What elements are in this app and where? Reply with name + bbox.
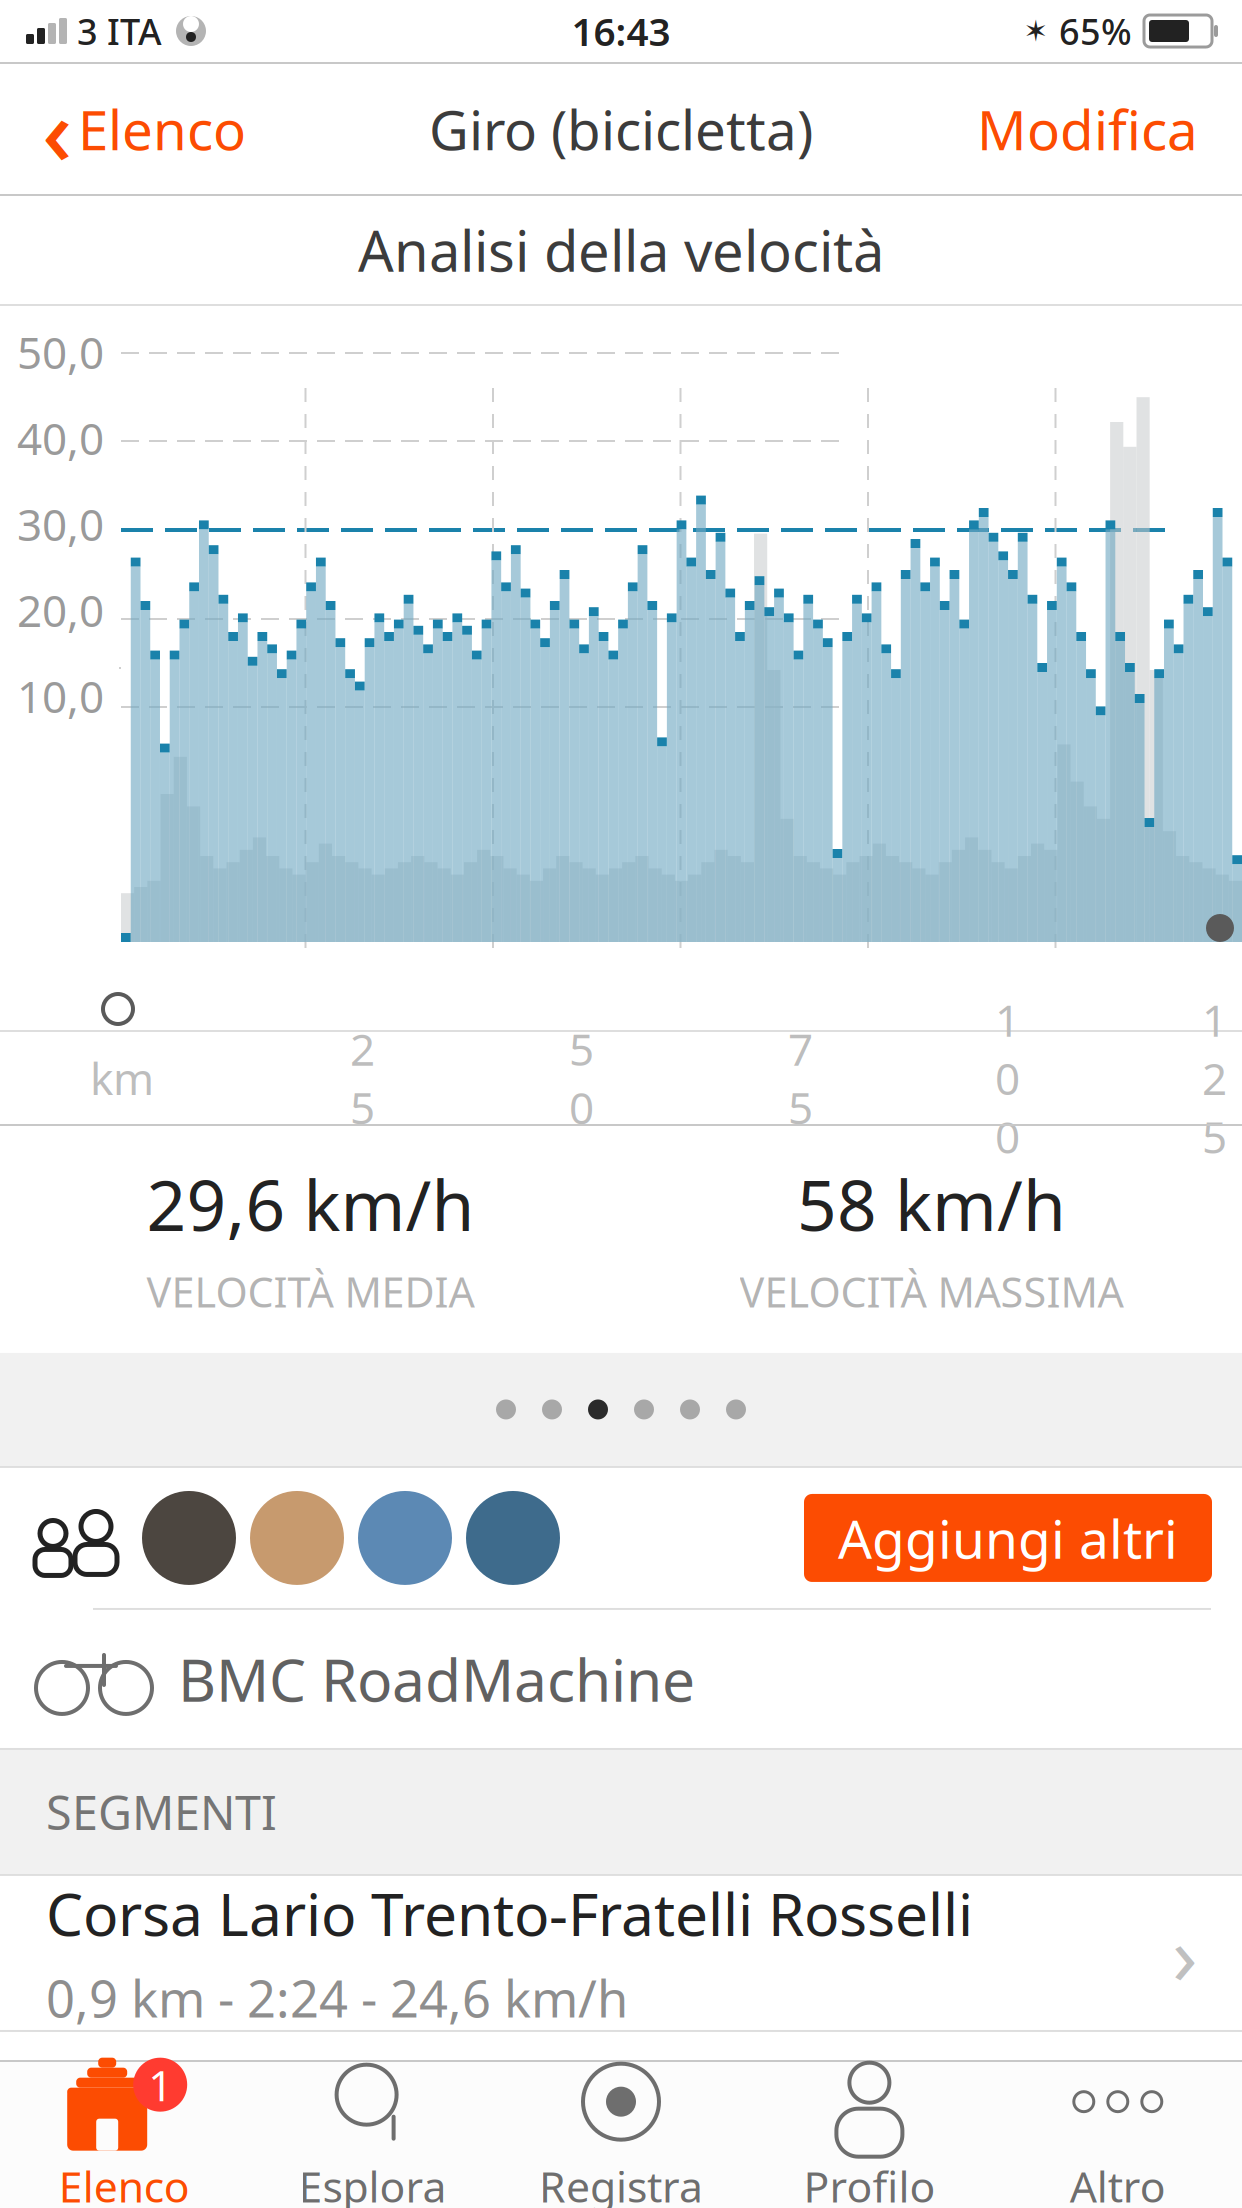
staticText: 50 (569, 1020, 594, 1136)
button[interactable]: Registra (497, 2062, 745, 2208)
button[interactable]: BMC RoadMachine (0, 1610, 1242, 1748)
staticText: ✶ (1023, 14, 1048, 48)
staticText: VELOCITÀ MEDIA (146, 1264, 474, 1319)
staticText: 58 km/h (797, 1158, 1066, 1250)
staticText: 40,0 (17, 409, 104, 467)
button[interactable]: Profilo (745, 2062, 994, 2208)
staticText: 30,0 (17, 495, 104, 553)
staticText: Esplora (299, 2158, 447, 2208)
staticText: › (1172, 1898, 1198, 2008)
button[interactable]: 1 (0, 2062, 248, 2208)
staticText: 20,0 (17, 581, 104, 639)
staticText: Elenco (78, 93, 246, 165)
staticText: ‹ (42, 67, 72, 191)
staticText: 25 (350, 1020, 375, 1136)
staticText: Corsa Lario Trento-Fratelli Rosselli (46, 1874, 973, 1952)
staticText: Altro (1070, 2158, 1166, 2208)
staticText: Modifica (977, 93, 1198, 165)
staticText: VELOCITÀ MASSIMA (739, 1264, 1123, 1319)
button[interactable]: Altro (994, 2062, 1242, 2208)
staticText: 75 (788, 1020, 813, 1136)
staticText: 0,9 km - 2:24 - 24,6 km/h (46, 1964, 628, 2032)
button[interactable]: ‹ (20, 55, 268, 203)
button[interactable]: Corsa Lario Trento-Fratelli Rosselli (0, 1876, 1242, 2030)
staticText: 10,0 (17, 667, 104, 725)
staticText: SEGMENTI (46, 1781, 277, 1843)
staticText: Analisi della velocità (358, 213, 884, 287)
staticText: km (90, 1049, 154, 1107)
staticText: Registra (539, 2158, 703, 2208)
staticText: Elenco (59, 2158, 190, 2208)
staticText: 1 (148, 2056, 172, 2113)
staticText: 29,6 km/h (146, 1158, 474, 1250)
staticText: 50,0 (17, 323, 104, 381)
staticText: 3 ITA (77, 7, 162, 55)
staticText: 16:43 (571, 5, 670, 57)
staticText: 125 (1202, 990, 1227, 1166)
button[interactable]: Esplora (248, 2062, 497, 2208)
staticText: BMC RoadMachine (178, 1640, 695, 1718)
staticText: Aggiungi altri (838, 1502, 1178, 1573)
button[interactable]: Modifica (953, 81, 1222, 177)
button[interactable]: Aggiungi altri (804, 1494, 1212, 1582)
staticText: 100 (995, 990, 1020, 1166)
staticText: 65% (1059, 7, 1132, 55)
staticText: Giro (bicicletta) (429, 93, 813, 165)
staticText: Profilo (803, 2158, 935, 2208)
